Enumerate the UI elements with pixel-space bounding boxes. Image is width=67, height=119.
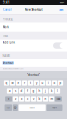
staticText: Cancel (3, 8, 12, 11)
button[interactable]: Cancel (1, 6, 14, 13)
staticText: e (17, 81, 19, 85)
staticText: Add Link (3, 41, 15, 44)
staticText: z (15, 97, 16, 101)
staticText: v (33, 97, 34, 101)
button[interactable]: ⌫ (55, 96, 62, 102)
staticText: r (24, 81, 25, 85)
button[interactable]: return (46, 104, 62, 111)
staticText: PHRASE (3, 18, 13, 21)
staticText: x (21, 97, 22, 101)
button[interactable]: ⇧ (5, 96, 12, 102)
button[interactable]: u (40, 80, 45, 86)
button[interactable]: a (7, 88, 12, 94)
staticText: o (53, 81, 55, 85)
button[interactable]: j (43, 88, 48, 94)
staticText: n (44, 97, 46, 101)
button[interactable]: m (49, 96, 54, 102)
staticText: 9:41 (3, 1, 10, 4)
button[interactable]: z (13, 96, 18, 102)
staticText: j (45, 89, 46, 93)
button[interactable]: h (37, 88, 42, 94)
staticText: m (50, 97, 52, 101)
button[interactable]: Save (57, 6, 66, 13)
staticText: return (52, 107, 57, 109)
staticText: space (30, 107, 35, 109)
staticText: Must be unique and lowercase (3, 68, 24, 70)
button[interactable]: q (4, 80, 9, 86)
button[interactable]: space (19, 104, 46, 111)
staticText: 123 (7, 107, 10, 109)
staticText: p (59, 81, 61, 85)
staticText: i (48, 81, 49, 85)
staticText: w (11, 81, 13, 85)
button[interactable]: o (52, 80, 57, 86)
staticText: ⌫ (56, 97, 60, 100)
staticText: l (57, 89, 58, 93)
staticText: a (9, 89, 10, 93)
staticText: h (38, 89, 40, 93)
staticText: s (15, 89, 16, 93)
staticText: Work (3, 25, 9, 29)
staticText: ☺ (14, 106, 17, 109)
staticText: shortcut (3, 61, 14, 65)
staticText: Save (59, 8, 64, 11)
button[interactable]: b (37, 96, 42, 102)
button[interactable]: Work (0, 22, 67, 32)
staticText: b (38, 97, 40, 101)
button[interactable]: t (28, 80, 33, 86)
button[interactable]: f (25, 88, 30, 94)
button[interactable]: p (58, 80, 63, 86)
button[interactable]: w (10, 80, 15, 86)
staticText: y (36, 81, 37, 85)
staticText: NAME (3, 54, 10, 58)
button[interactable]: v (31, 96, 36, 102)
button[interactable]: r (22, 80, 27, 86)
staticText: c (27, 97, 28, 101)
button[interactable]: 123 (5, 104, 12, 111)
staticText: t (30, 81, 31, 85)
button[interactable]: n (43, 96, 48, 102)
staticText: New Shortcut (24, 8, 42, 11)
staticText: q (5, 81, 7, 85)
staticText: ▮▮▮ ▰ (60, 2, 64, 3)
staticText: “shortcut” (27, 73, 40, 77)
staticText: k (51, 89, 52, 93)
button[interactable]: Add Link (0, 40, 67, 52)
staticText: g (32, 89, 34, 93)
button[interactable]: s (13, 88, 18, 94)
button[interactable]: k (49, 88, 54, 94)
button[interactable]: d (19, 88, 24, 94)
button[interactable]: ☺ (13, 104, 18, 111)
button[interactable]: i (46, 80, 51, 86)
staticText: d (20, 89, 22, 93)
button[interactable]: c (25, 96, 30, 102)
button[interactable]: y (34, 80, 39, 86)
staticText: u (41, 81, 43, 85)
button[interactable]: e (16, 80, 21, 86)
staticText: f (27, 89, 28, 93)
button[interactable]: g (31, 88, 36, 94)
staticText: LINK (3, 35, 9, 38)
button[interactable]: l (55, 88, 60, 94)
button[interactable]: x (19, 96, 24, 102)
button[interactable]: Toggle (53, 42, 64, 49)
staticText: ⇧ (8, 97, 10, 100)
